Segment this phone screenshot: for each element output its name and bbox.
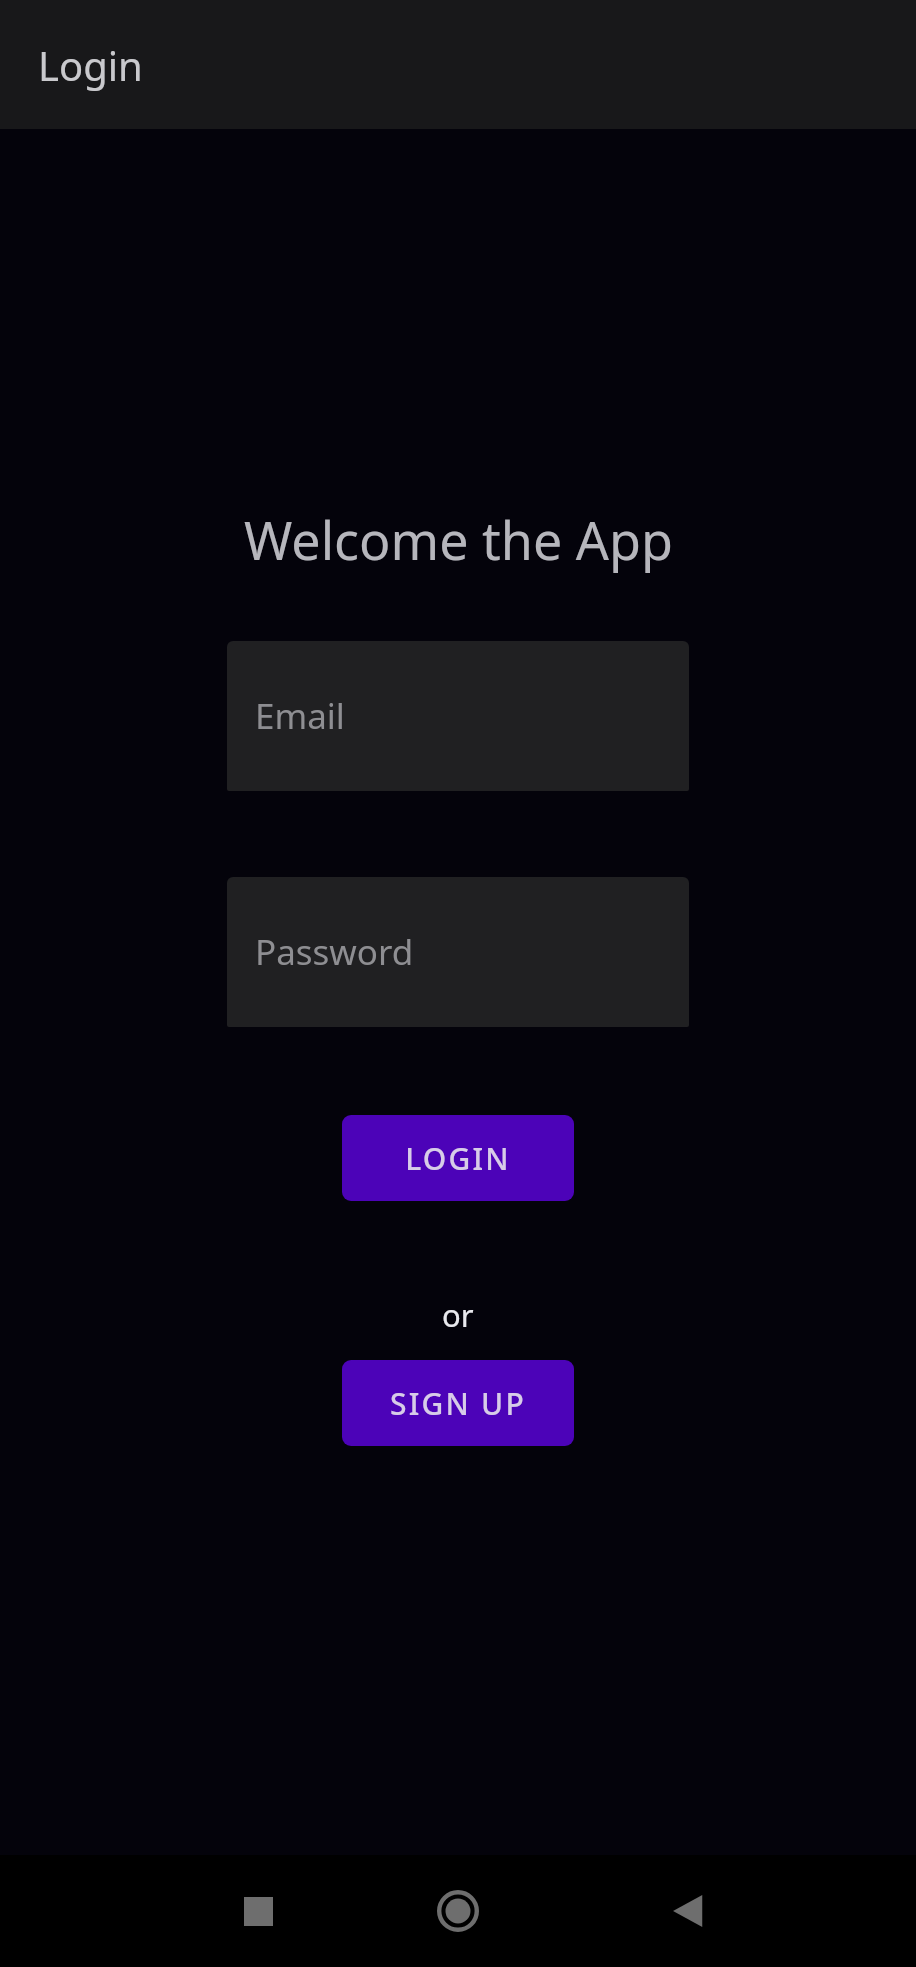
staticText: or: [442, 1294, 474, 1336]
button[interactable]: Password: [227, 877, 689, 1027]
button[interactable]: Email: [227, 641, 689, 791]
staticText: SIGN UP: [390, 1383, 526, 1424]
button[interactable]: LOGIN: [342, 1115, 574, 1201]
staticText: Password: [255, 928, 414, 976]
staticText: Email: [255, 692, 345, 740]
staticText: LOGIN: [405, 1138, 511, 1179]
button[interactable]: Recent apps: [228, 1881, 288, 1941]
button[interactable]: Back: [658, 1881, 718, 1941]
staticText: Welcome the App: [244, 504, 673, 575]
staticText: Login: [38, 38, 143, 92]
button[interactable]: SIGN UP: [342, 1360, 574, 1446]
button[interactable]: Home: [424, 1877, 492, 1945]
